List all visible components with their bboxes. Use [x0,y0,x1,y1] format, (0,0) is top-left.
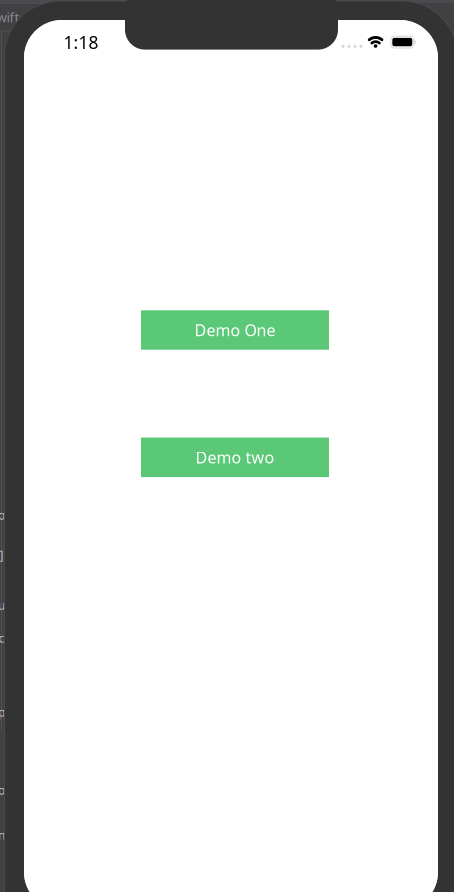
staticText: c [0,630,4,646]
staticText: 1:18 [63,31,98,54]
staticText: ] [0,547,3,563]
staticText: o [0,782,5,798]
button[interactable]: Demo One [141,310,329,350]
staticText: n [0,827,5,843]
staticText: Demo One [194,319,275,341]
staticText: p [0,704,5,720]
staticText: Demo two [195,447,274,468]
staticText: o [0,507,5,523]
staticText: u [0,597,5,613]
button[interactable]: Demo two [141,438,329,477]
staticText: wift [0,8,19,26]
